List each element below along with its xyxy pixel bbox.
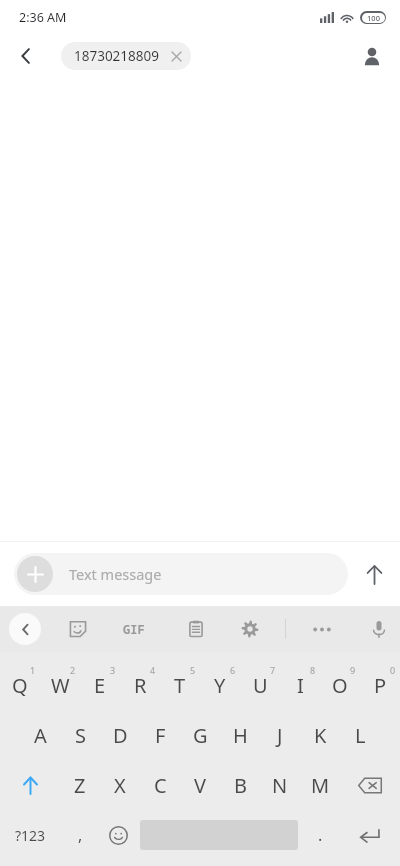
staticText: Y bbox=[214, 672, 226, 699]
staticText: 7 bbox=[270, 664, 276, 676]
staticText: 1 bbox=[30, 664, 36, 676]
button[interactable]: GIF bbox=[116, 611, 152, 647]
button[interactable]: J bbox=[260, 710, 300, 760]
button[interactable]: P bbox=[360, 660, 400, 710]
button[interactable]: Comma bbox=[61, 810, 99, 860]
button[interactable]: Stickers bbox=[60, 611, 96, 647]
staticText: 3 bbox=[110, 664, 116, 676]
button[interactable]: Enter bbox=[339, 810, 400, 860]
button[interactable]: Send bbox=[348, 548, 400, 600]
button[interactable]: Collapse toolbar bbox=[9, 613, 41, 645]
staticText: W bbox=[51, 672, 70, 699]
button[interactable]: R bbox=[120, 660, 160, 710]
staticText: GIF bbox=[123, 621, 145, 637]
staticText: I bbox=[297, 672, 304, 699]
button[interactable]: M bbox=[300, 760, 340, 810]
staticText: Q bbox=[12, 672, 28, 699]
staticText: 100 bbox=[367, 13, 380, 23]
button[interactable]: 18730218809 bbox=[61, 42, 191, 70]
staticText: T bbox=[174, 672, 186, 699]
button[interactable]: F bbox=[140, 710, 180, 760]
button[interactable]: G bbox=[180, 710, 220, 760]
button[interactable]: Attach bbox=[17, 556, 53, 592]
staticText: H bbox=[233, 722, 248, 749]
staticText: U bbox=[253, 672, 268, 699]
button[interactable]: Voice input bbox=[361, 611, 397, 647]
staticText: ?123 bbox=[15, 826, 46, 845]
button[interactable]: Period bbox=[301, 810, 339, 860]
button[interactable]: Back bbox=[6, 36, 46, 76]
button[interactable]: H bbox=[220, 710, 260, 760]
staticText: . bbox=[318, 824, 323, 846]
button[interactable]: Y bbox=[200, 660, 240, 710]
button[interactable]: C bbox=[140, 760, 180, 810]
button[interactable]: ?123 bbox=[0, 810, 61, 860]
staticText: G bbox=[193, 722, 208, 749]
button[interactable]: W bbox=[40, 660, 80, 710]
button[interactable]: Contact bbox=[352, 36, 392, 76]
staticText: K bbox=[314, 722, 327, 749]
button[interactable]: S bbox=[60, 710, 100, 760]
button[interactable]: O bbox=[320, 660, 360, 710]
staticText: B bbox=[234, 772, 247, 799]
staticText: 8 bbox=[310, 664, 316, 676]
staticText: R bbox=[134, 672, 147, 699]
button[interactable]: D bbox=[100, 710, 140, 760]
staticText: 2:36 AM bbox=[19, 9, 67, 26]
button[interactable]: Backspace bbox=[340, 760, 400, 810]
staticText: S bbox=[75, 722, 86, 749]
staticText: P bbox=[374, 672, 387, 699]
staticText: 18730218809 bbox=[74, 47, 159, 65]
button[interactable]: Clipboard bbox=[178, 611, 214, 647]
button[interactable]: V bbox=[180, 760, 220, 810]
staticText: 2 bbox=[70, 664, 76, 676]
button[interactable]: Shift bbox=[0, 760, 60, 810]
staticText: J bbox=[277, 722, 283, 749]
staticText: 9 bbox=[350, 664, 356, 676]
button[interactable]: Attach bbox=[14, 553, 348, 595]
staticText: A bbox=[34, 722, 47, 749]
staticText: M bbox=[311, 772, 330, 799]
button[interactable]: Z bbox=[60, 760, 100, 810]
button[interactable]: I bbox=[280, 660, 320, 710]
staticText: F bbox=[155, 722, 166, 749]
staticText: Z bbox=[74, 772, 86, 799]
staticText: Text message bbox=[69, 564, 162, 584]
button[interactable]: Emoji bbox=[99, 810, 137, 860]
staticText: 6 bbox=[230, 664, 236, 676]
staticText: 4 bbox=[150, 664, 156, 676]
staticText: D bbox=[113, 722, 128, 749]
button[interactable]: A bbox=[20, 710, 60, 760]
button[interactable]: K bbox=[300, 710, 340, 760]
staticText: C bbox=[154, 772, 167, 799]
button[interactable]: X bbox=[100, 760, 140, 810]
button[interactable]: U bbox=[240, 660, 280, 710]
button[interactable]: More options bbox=[304, 611, 340, 647]
staticText: L bbox=[355, 722, 366, 749]
button[interactable]: N bbox=[260, 760, 300, 810]
staticText: 5 bbox=[190, 664, 196, 676]
staticText: 0 bbox=[390, 664, 396, 676]
staticText: O bbox=[332, 672, 348, 699]
staticText: , bbox=[78, 824, 83, 846]
button[interactable]: Settings bbox=[232, 611, 268, 647]
button[interactable]: L bbox=[340, 710, 380, 760]
staticText: N bbox=[272, 772, 288, 799]
staticText: E bbox=[94, 672, 106, 699]
button[interactable]: Remove recipient bbox=[168, 48, 184, 64]
button[interactable]: T bbox=[160, 660, 200, 710]
button[interactable]: Q bbox=[0, 660, 40, 710]
button[interactable]: B bbox=[220, 760, 260, 810]
staticText: X bbox=[114, 772, 126, 799]
button[interactable]: E bbox=[80, 660, 120, 710]
staticText: V bbox=[194, 772, 206, 799]
